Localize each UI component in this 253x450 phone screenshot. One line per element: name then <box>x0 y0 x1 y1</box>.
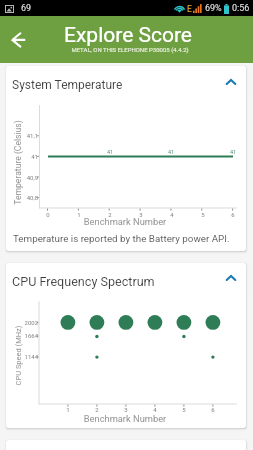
staticText: 5 <box>174 406 194 413</box>
staticText: 4 <box>162 211 182 218</box>
staticText: 0:56 <box>232 3 250 14</box>
staticText: 3 <box>131 211 151 218</box>
staticText: Temperature (Celsius) <box>12 110 22 214</box>
staticText: 0 <box>38 211 58 218</box>
staticText: 5 <box>193 211 213 218</box>
staticText: 2002 <box>6 319 38 326</box>
staticText: Benchmark Number <box>55 216 195 227</box>
staticText: METAL, ON THIS ELEPHONE P30005 (4.4.2) <box>20 46 240 53</box>
staticText: CPU Speed (MHz) <box>13 315 22 395</box>
staticText: 69 <box>21 3 32 14</box>
staticText: 2 <box>87 406 107 413</box>
button[interactable] <box>6 263 246 299</box>
staticText: 1 <box>69 211 89 218</box>
staticText: E <box>187 4 192 14</box>
staticText: 69% <box>205 3 222 14</box>
button[interactable]: Collapse section <box>217 68 245 96</box>
staticText: Explore Score <box>18 23 238 48</box>
staticText: Benchmark Number <box>55 413 195 424</box>
staticText: 1144 <box>6 353 38 360</box>
staticText: 41,1 <box>6 132 38 139</box>
staticText: 41 <box>223 149 243 155</box>
staticText: System Temperature <box>12 78 123 92</box>
staticText: CPU Frequency Spectrum <box>12 274 155 289</box>
staticText: 6 <box>223 211 243 218</box>
staticText: 1664 <box>6 332 38 339</box>
staticText: 2 <box>100 211 120 218</box>
staticText: 6 <box>203 406 223 413</box>
staticText: 41 <box>100 149 120 155</box>
staticText: 3 <box>116 406 136 413</box>
staticText: 40,8 <box>6 194 38 201</box>
staticText: 41 <box>161 149 181 155</box>
staticText: 4 <box>145 406 165 413</box>
staticText: 41 <box>6 153 38 160</box>
button[interactable] <box>6 66 246 102</box>
staticText: 1 <box>58 406 78 413</box>
button[interactable]: Back <box>2 24 34 56</box>
staticText: 40,9 <box>6 174 38 181</box>
staticText: Temperature is reported by the Battery p… <box>13 233 230 244</box>
button[interactable]: Collapse section <box>217 264 245 292</box>
